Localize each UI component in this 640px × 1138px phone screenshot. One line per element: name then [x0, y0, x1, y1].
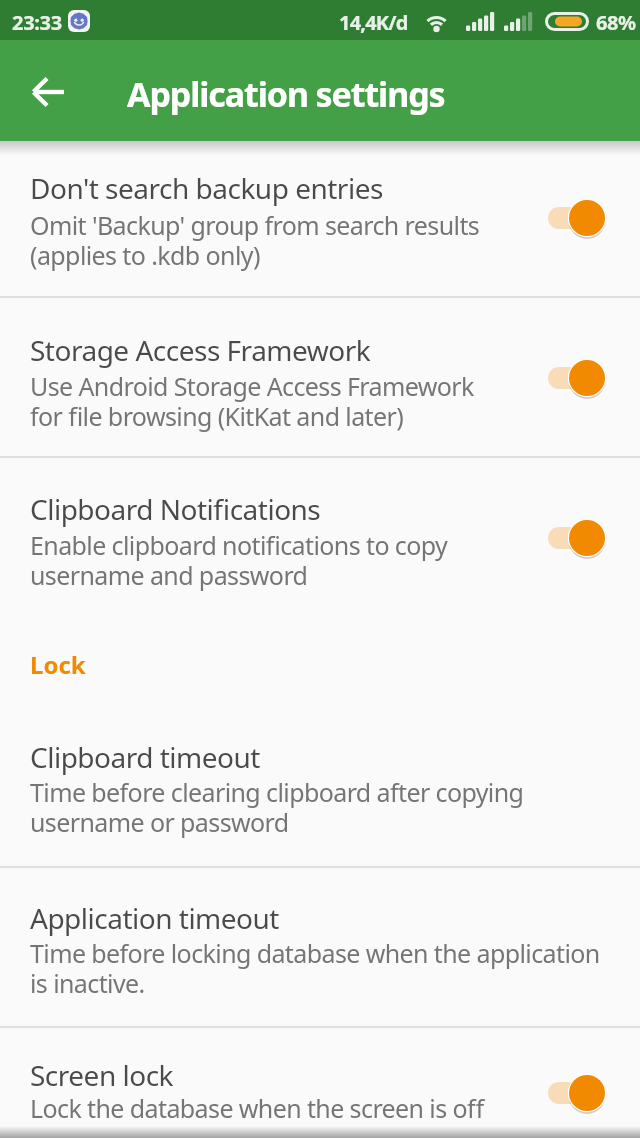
staticText: Time before clearing clipboard after cop… [30, 775, 524, 839]
button[interactable] [28, 70, 72, 114]
staticText: Clipboard Notifications [30, 490, 321, 528]
staticText: Clipboard timeout [30, 738, 260, 776]
staticText: Screen lock [30, 1056, 174, 1094]
button[interactable]: Clipboard timeout [0, 700, 640, 866]
staticText: 68% [596, 9, 636, 36]
staticText: Don't search backup entries [30, 169, 383, 207]
button[interactable]: Don't search backup entries [0, 152, 640, 296]
staticText: Use Android Storage Access Framework for… [30, 369, 474, 433]
staticText: Storage Access Framework [30, 331, 371, 369]
staticText: Lock [30, 648, 86, 681]
button[interactable]: Application timeout [0, 868, 640, 1026]
staticText: Omit 'Backup' group from search results … [30, 208, 480, 272]
staticText: 14,4K/d [339, 9, 408, 36]
staticText: Application timeout [30, 899, 279, 937]
staticText: 23:33 [12, 9, 62, 36]
staticText: Time before locking database when the ap… [30, 936, 600, 1000]
button[interactable]: Screen lock [0, 1028, 640, 1138]
staticText: Application settings [127, 71, 445, 117]
staticText: Enable clipboard notifications to copy u… [30, 528, 448, 592]
button[interactable]: Clipboard Notifications [0, 458, 640, 620]
staticText: Lock the database when the screen is off [30, 1091, 484, 1125]
button[interactable]: Storage Access Framework [0, 298, 640, 456]
